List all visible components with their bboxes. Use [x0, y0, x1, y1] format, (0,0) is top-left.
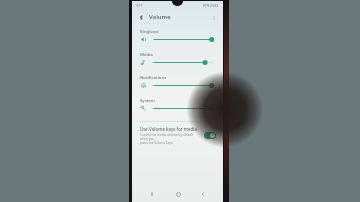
button[interactable]: Use Volume keys for media toggle: [204, 132, 216, 139]
button[interactable]: Home: [172, 188, 184, 200]
button[interactable]: Back: [137, 13, 146, 22]
staticText: 3:17: [136, 4, 143, 8]
staticText: Volume: [149, 13, 171, 21]
button[interactable]: Use Volume keys for media: [140, 126, 216, 145]
staticText: Use Volume keys for media: [140, 126, 197, 132]
button[interactable]: Notifications: [140, 74, 216, 89]
staticText: 87% 23:54: [203, 4, 219, 8]
button[interactable]: Back: [197, 188, 209, 200]
button[interactable]: Media: [140, 51, 216, 66]
staticText: Notifications: [140, 74, 167, 80]
button[interactable]: Ringtone: [140, 28, 216, 43]
button[interactable]: Recents: [146, 188, 158, 200]
staticText: System: [140, 97, 155, 103]
staticText: Media: [140, 51, 153, 57]
button[interactable]: System: [140, 97, 216, 112]
button[interactable]: More options: [209, 13, 218, 22]
staticText: Control the media volume by default when…: [140, 133, 200, 145]
staticText: Ringtone: [140, 28, 159, 34]
